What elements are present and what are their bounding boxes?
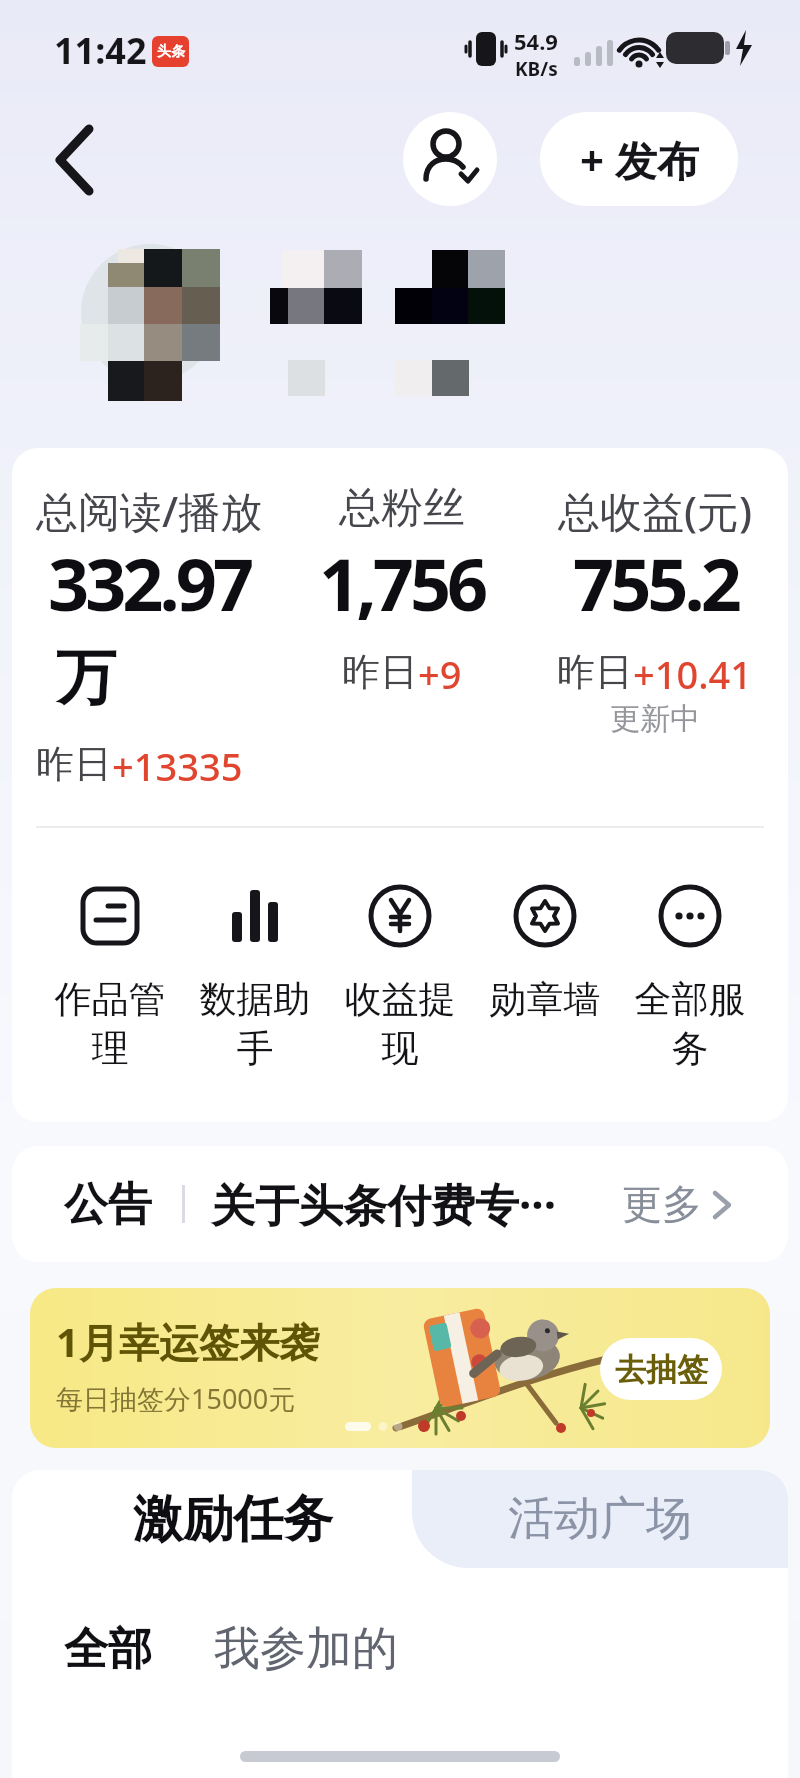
staticText: 更多: [622, 1179, 702, 1229]
staticText: 11:42: [54, 26, 147, 75]
staticText: +13335: [112, 740, 243, 792]
staticText: 关于头条付费专···: [211, 1174, 557, 1234]
staticText: 作品管 理: [45, 976, 175, 1072]
staticText: 755.2: [573, 534, 738, 632]
staticText: 去抽签: [615, 1350, 708, 1389]
staticText: 公告: [64, 1177, 152, 1232]
staticText: KB/s: [515, 56, 558, 82]
button[interactable]: 勋章墙: [480, 884, 610, 1023]
staticText: 昨日: [557, 648, 633, 696]
staticText: 总收益(元): [558, 482, 753, 539]
staticText: +10.41: [633, 648, 753, 700]
button[interactable]: 全部: [64, 1622, 152, 1677]
staticText: 昨日: [36, 740, 112, 788]
staticText: 每日抽签分15000元: [56, 1380, 296, 1417]
button[interactable]: + 发布: [540, 112, 738, 206]
button[interactable]: 公告: [12, 1146, 788, 1262]
staticText: 万: [56, 640, 116, 716]
staticText: 数据助 手: [190, 976, 320, 1072]
staticText: 总阅读/播放: [36, 482, 263, 539]
button[interactable]: [40, 118, 110, 202]
button[interactable]: 收益提 现: [335, 884, 465, 1072]
staticText: +9: [418, 648, 462, 700]
staticText: + 发布: [580, 131, 699, 188]
button[interactable]: 我参加的: [214, 1620, 398, 1678]
staticText: 活动广场: [508, 1490, 692, 1548]
staticText: 昨日: [342, 648, 418, 696]
staticText: 收益提 现: [335, 976, 465, 1072]
button[interactable]: 全部服 务: [625, 884, 755, 1072]
staticText: 1月幸运签来袭: [56, 1314, 319, 1369]
staticText: 头条: [157, 43, 185, 61]
button[interactable]: 活动广场: [412, 1470, 788, 1568]
staticText: 332.97: [48, 534, 251, 632]
button[interactable]: 作品管 理: [45, 884, 175, 1072]
staticText: 更新中: [610, 700, 700, 738]
staticText: 我参加的: [214, 1620, 398, 1678]
button[interactable]: 去抽签: [600, 1338, 722, 1400]
staticText: 1,756: [319, 534, 485, 632]
button[interactable]: 数据助 手: [190, 884, 320, 1072]
staticText: 全部: [64, 1622, 152, 1677]
staticText: 激励任务: [133, 1488, 333, 1551]
staticText: 全部服 务: [625, 976, 755, 1072]
button[interactable]: 激励任务: [38, 1470, 428, 1568]
staticText: 总粉丝: [339, 482, 465, 535]
button[interactable]: [403, 112, 497, 206]
staticText: 54.9: [514, 26, 558, 56]
button[interactable]: 1月幸运签来袭: [30, 1288, 770, 1448]
staticText: 勋章墙: [480, 976, 610, 1023]
